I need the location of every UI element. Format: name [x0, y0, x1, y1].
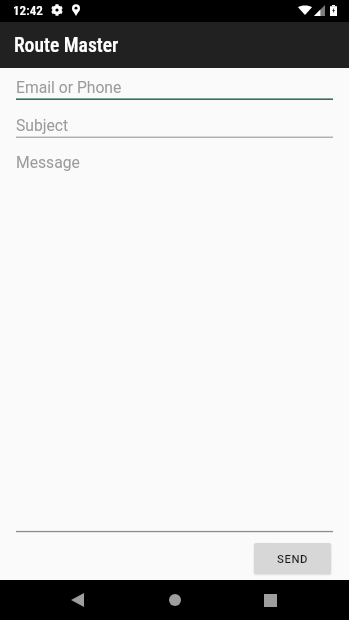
button[interactable]: Recents	[252, 582, 288, 618]
button[interactable]: Home	[157, 582, 193, 618]
button[interactable]: Subject	[0, 115, 349, 135]
button[interactable]: SEND	[254, 543, 331, 574]
button[interactable]: Back	[59, 582, 95, 618]
staticText: SEND	[277, 552, 309, 565]
staticText: Route Master	[14, 34, 119, 57]
button[interactable]: Message	[0, 152, 349, 172]
staticText: Email or Phone	[16, 78, 122, 96]
button[interactable]: Email or Phone	[0, 77, 349, 97]
staticText: Message	[16, 153, 80, 171]
staticText: 12:42	[13, 3, 43, 18]
staticText: Subject	[16, 116, 69, 134]
